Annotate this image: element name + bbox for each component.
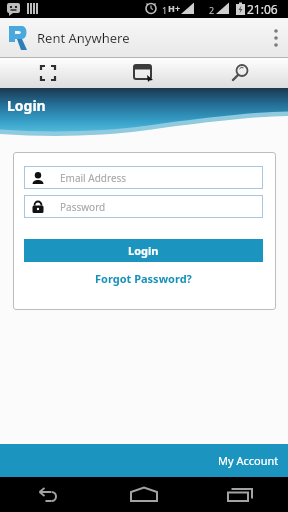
staticText: 2 bbox=[209, 4, 215, 16]
button[interactable]: Forgot Password? bbox=[24, 271, 263, 286]
staticText: My Account bbox=[218, 453, 279, 468]
button[interactable] bbox=[0, 58, 96, 88]
staticText: Login bbox=[128, 243, 159, 258]
staticText: 21:06 bbox=[247, 1, 278, 17]
button[interactable] bbox=[192, 58, 288, 88]
button[interactable] bbox=[264, 18, 288, 57]
staticText: H+ bbox=[168, 2, 181, 14]
button[interactable]: Email Address bbox=[24, 166, 263, 189]
button[interactable]: My Account bbox=[0, 444, 288, 477]
staticText: Password bbox=[60, 200, 106, 214]
staticText: 1 bbox=[162, 4, 168, 16]
button[interactable] bbox=[96, 477, 192, 512]
staticText: Forgot Password? bbox=[95, 271, 192, 286]
button[interactable] bbox=[192, 477, 288, 512]
staticText: Login bbox=[7, 96, 46, 115]
staticText: Email Address bbox=[60, 171, 127, 185]
staticText: Rent Anywhere bbox=[37, 29, 130, 47]
button[interactable]: Password bbox=[24, 195, 263, 218]
button[interactable] bbox=[0, 477, 96, 512]
button[interactable]: Login bbox=[24, 239, 263, 262]
button[interactable] bbox=[96, 58, 192, 88]
